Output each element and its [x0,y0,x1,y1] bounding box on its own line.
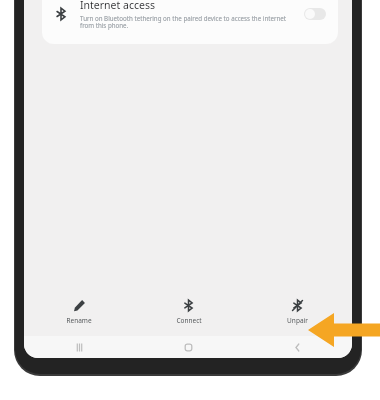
staticText: Rename [66,316,92,325]
button[interactable]: Connect [134,288,243,336]
button[interactable]: Internet access toggle [304,8,326,20]
staticText: Unpair [287,316,308,325]
button[interactable]: Home [134,336,243,358]
button[interactable]: Rename [24,288,134,336]
staticText: Internet access [80,0,155,12]
button[interactable]: Unpair [243,288,352,336]
button[interactable]: Recents [24,336,134,358]
button[interactable]: Back [243,336,352,358]
button[interactable]: Internet access [42,0,338,44]
staticText: Connect [176,316,202,325]
staticText: Turn on Bluetooth tethering on the paire… [80,14,296,30]
